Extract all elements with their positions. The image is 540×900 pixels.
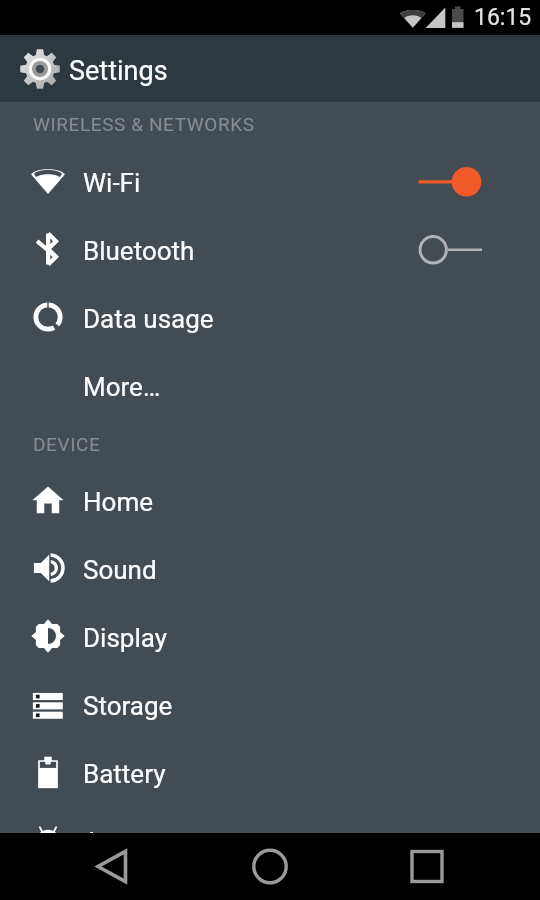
button[interactable]: Apps bbox=[0, 806, 540, 874]
button[interactable]: Off bbox=[418, 215, 540, 283]
staticText: DEVICE bbox=[33, 433, 101, 455]
staticText: Battery bbox=[83, 759, 166, 789]
staticText: Apps bbox=[83, 827, 143, 857]
button[interactable]: Data usage bbox=[0, 283, 540, 351]
staticText: Data usage bbox=[83, 304, 214, 334]
staticText: Bluetooth bbox=[83, 236, 195, 266]
button[interactable]: Home bbox=[235, 833, 305, 900]
button[interactable]: Sound bbox=[0, 534, 540, 602]
staticText: More… bbox=[83, 372, 161, 402]
button[interactable]: Home bbox=[0, 466, 540, 534]
staticText: Storage bbox=[83, 691, 173, 721]
staticText: Settings bbox=[69, 55, 168, 87]
staticText: Wi-Fi bbox=[83, 168, 141, 198]
button[interactable]: Storage bbox=[0, 670, 540, 738]
staticText: Home bbox=[83, 487, 153, 517]
button[interactable]: On bbox=[418, 147, 540, 215]
button[interactable]: More… bbox=[0, 351, 540, 419]
staticText: WIRELESS & NETWORKS bbox=[33, 113, 255, 135]
staticText: Sound bbox=[83, 555, 157, 585]
staticText: 16:15 bbox=[474, 4, 532, 31]
button[interactable]: Back bbox=[77, 833, 147, 900]
button[interactable]: Display bbox=[0, 602, 540, 670]
button[interactable]: Wi-Fi bbox=[0, 147, 540, 215]
button[interactable]: Battery bbox=[0, 738, 540, 806]
button[interactable]: Bluetooth bbox=[0, 215, 540, 283]
button[interactable]: Recent apps bbox=[392, 833, 462, 900]
staticText: Display bbox=[83, 623, 167, 653]
